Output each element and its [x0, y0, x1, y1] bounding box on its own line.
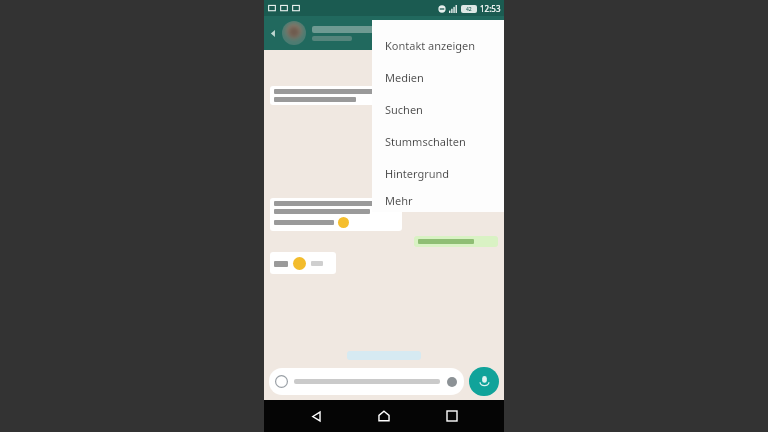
staticText: Stummschalten: [385, 134, 466, 149]
button[interactable]: Recents: [436, 400, 468, 432]
button[interactable]: Suchen: [372, 93, 504, 125]
staticText: 42: [466, 6, 472, 13]
button[interactable]: Emoji: [269, 368, 464, 395]
staticText: Kontakt anzeigen: [385, 38, 476, 53]
button[interactable]: Home: [368, 400, 400, 432]
staticText: Medien: [385, 70, 424, 85]
button[interactable]: Back: [300, 400, 332, 432]
staticText: 12:53: [480, 3, 501, 14]
other: Emoji: [275, 375, 288, 388]
button[interactable]: Mehr: [372, 189, 504, 212]
other: Back: [270, 29, 279, 38]
staticText: Mehr: [385, 193, 413, 208]
button[interactable]: Stummschalten: [372, 125, 504, 157]
button[interactable]: Kontakt anzeigen: [372, 29, 504, 61]
button[interactable]: Hintergrund: [372, 157, 504, 189]
staticText: Suchen: [385, 102, 423, 117]
staticText: Hintergrund: [385, 166, 450, 181]
button[interactable]: Voice message: [469, 367, 499, 396]
other: Attach: [446, 376, 458, 388]
button[interactable]: Medien: [372, 61, 504, 93]
